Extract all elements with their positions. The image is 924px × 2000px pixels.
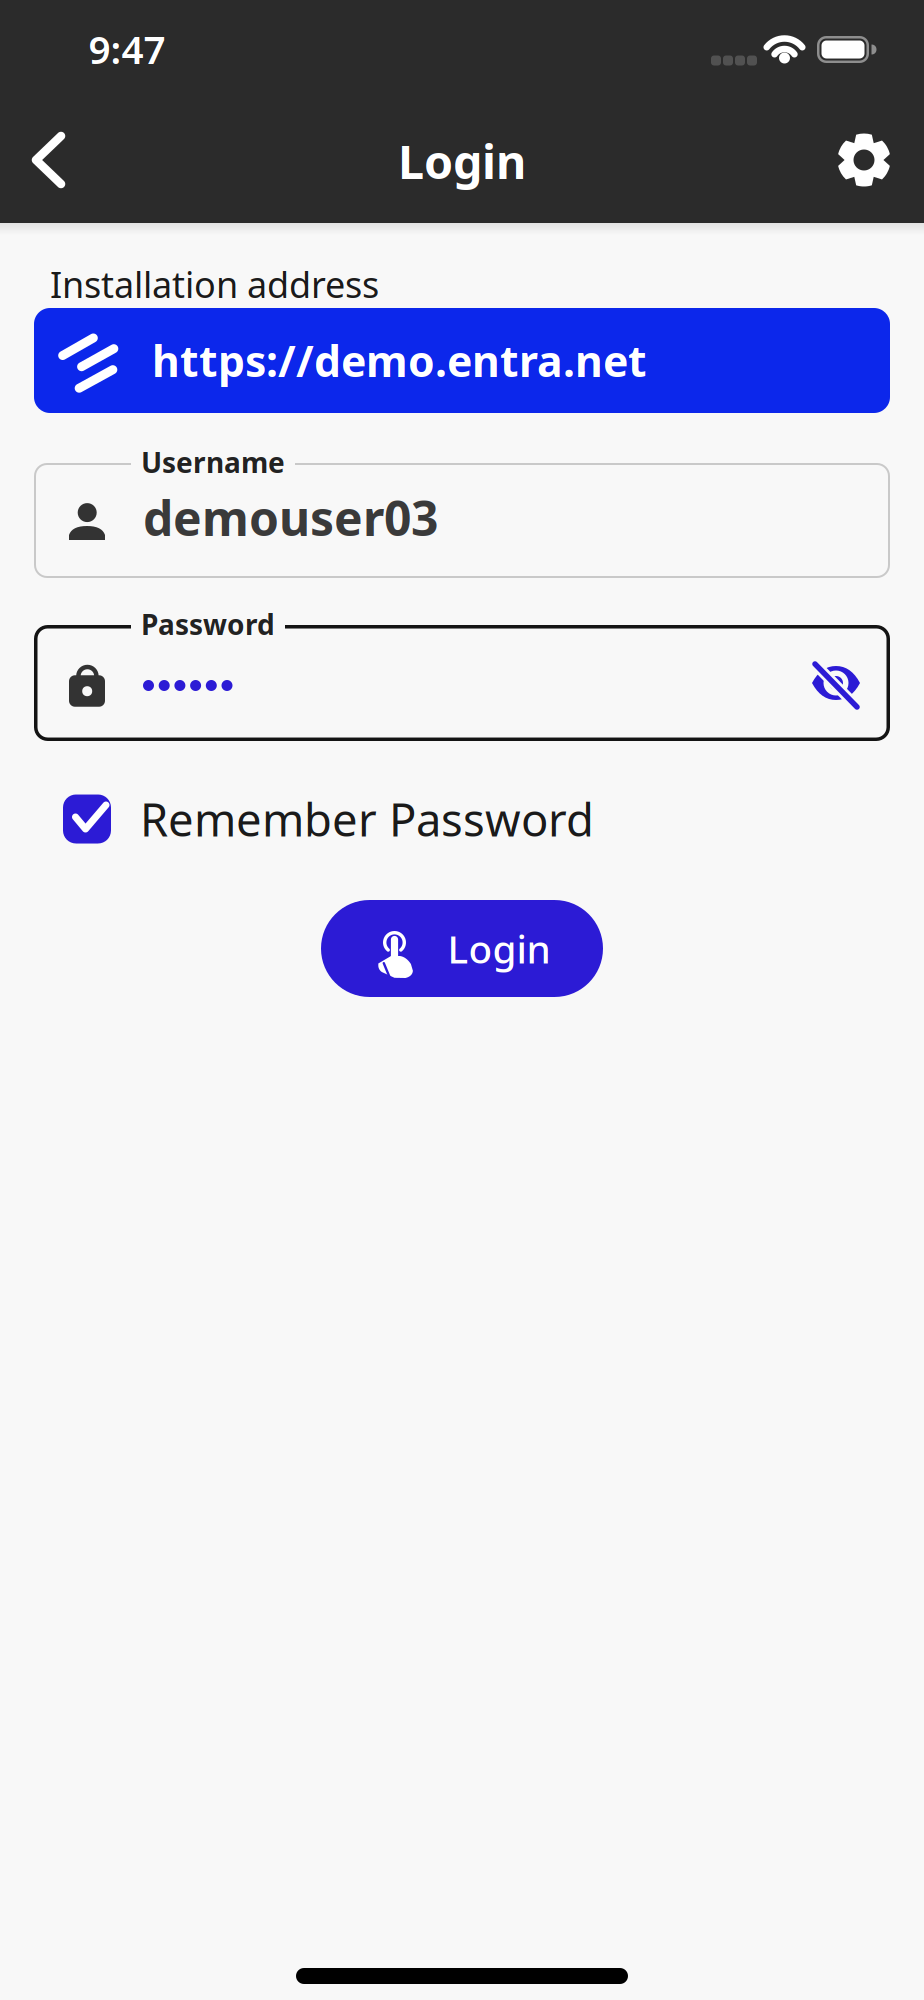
staticText: Login [447, 923, 550, 974]
button[interactable]: Remember Password [63, 789, 594, 849]
staticText: Password [141, 605, 275, 643]
button[interactable]: Password [34, 625, 890, 741]
button[interactable] [804, 654, 868, 714]
staticText: demouser03 [143, 486, 438, 549]
button[interactable] [18, 129, 80, 191]
staticText: Username [141, 443, 285, 481]
staticText: https://demo.entra.net [152, 332, 647, 389]
button[interactable] [832, 128, 896, 192]
staticText: Login [398, 130, 526, 192]
staticText: Remember Password [140, 789, 594, 849]
button[interactable]: Login [321, 900, 603, 997]
button[interactable]: https://demo.entra.net [34, 308, 890, 413]
button[interactable]: demouser03 [34, 463, 890, 578]
staticText: Installation address [50, 260, 379, 308]
staticText: 9:47 [88, 23, 165, 75]
